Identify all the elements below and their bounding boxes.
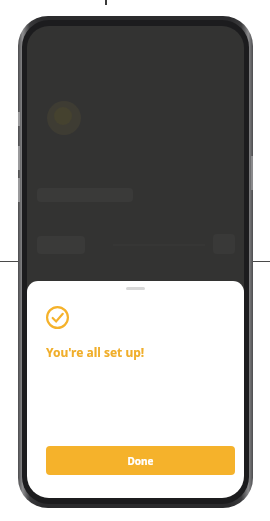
other: Success <box>46 306 69 329</box>
staticText: You're all set up! <box>46 344 145 360</box>
staticText: Done <box>127 454 154 468</box>
button[interactable]: Done <box>46 446 235 475</box>
